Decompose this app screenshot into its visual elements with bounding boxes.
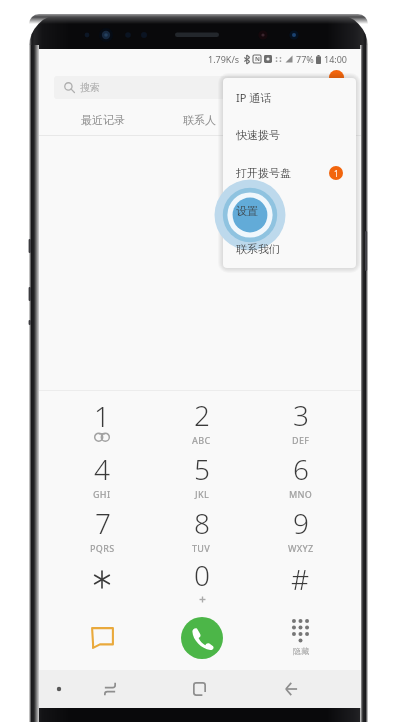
button[interactable]: # [251, 556, 350, 610]
button[interactable]: More options [45, 670, 73, 708]
button[interactable]: 7 [52, 502, 152, 556]
button[interactable]: IP 通话 [223, 78, 356, 116]
button[interactable]: 5 [152, 448, 251, 502]
staticText: DEF [292, 434, 310, 446]
staticText: ABC [192, 434, 211, 446]
staticText: 7 [95, 504, 111, 542]
staticText: 设置 [236, 204, 258, 218]
staticText: 0 [194, 556, 210, 594]
staticText: 9 [293, 504, 309, 542]
button[interactable]: 最近记录 [55, 106, 151, 134]
staticText: 最近记录 [81, 113, 125, 127]
staticText: 打开拨号盘 [236, 166, 291, 180]
button[interactable] [52, 556, 152, 610]
staticText: 隐藏 [293, 646, 309, 656]
staticText: WXYZ [288, 542, 314, 554]
button[interactable]: 1 [52, 394, 152, 448]
staticText: 6 [293, 450, 309, 488]
staticText: 快速拨号 [236, 128, 280, 142]
staticText: MNO [289, 488, 313, 500]
button[interactable]: 9 [251, 502, 350, 556]
button[interactable]: 3 [251, 394, 350, 448]
staticText: 8 [194, 504, 210, 542]
staticText: JKL [195, 488, 210, 500]
staticText: 4 [94, 450, 110, 488]
button[interactable]: 联系人 [151, 106, 247, 134]
button[interactable]: Back [269, 670, 313, 708]
button[interactable]: Call [152, 610, 251, 665]
staticText: 14:00 [324, 53, 348, 65]
staticText: # [291, 560, 310, 598]
staticText: 77% [296, 53, 314, 65]
staticText: 2 [194, 396, 210, 434]
button[interactable]: 0 [152, 556, 251, 610]
button[interactable]: 6 [251, 448, 350, 502]
staticText: GHI [93, 488, 111, 500]
staticText: 1.79K/s [208, 53, 240, 65]
button[interactable]: 搜索 [54, 76, 346, 99]
button[interactable]: Send message [52, 610, 152, 665]
staticText: 3 [293, 396, 309, 434]
staticText: 5 [194, 450, 210, 488]
button[interactable]: 快速拨号 [223, 116, 356, 154]
button[interactable]: 2 [152, 394, 251, 448]
staticText: 搜索 [80, 81, 100, 94]
button[interactable]: Switch apps [88, 670, 132, 708]
staticText: 1 [94, 397, 110, 435]
staticText: IP 通话 [236, 90, 272, 105]
staticText: 1 [334, 168, 339, 179]
staticText: N [255, 55, 260, 63]
button[interactable]: 8 [152, 502, 251, 556]
button[interactable]: 设置 [223, 192, 356, 230]
button[interactable]: Recents [177, 670, 221, 708]
staticText: PQRS [90, 542, 115, 554]
button[interactable]: 4 [52, 448, 152, 502]
button[interactable]: 打开拨号盘 [223, 154, 356, 192]
staticText: TUV [192, 542, 211, 554]
staticText: 联系我们 [236, 242, 280, 256]
button[interactable]: 联系我们 [223, 230, 356, 268]
button[interactable]: 收藏 [247, 106, 343, 134]
button[interactable]: Hide keypad [251, 610, 350, 665]
staticText: 联系人 [183, 113, 216, 127]
